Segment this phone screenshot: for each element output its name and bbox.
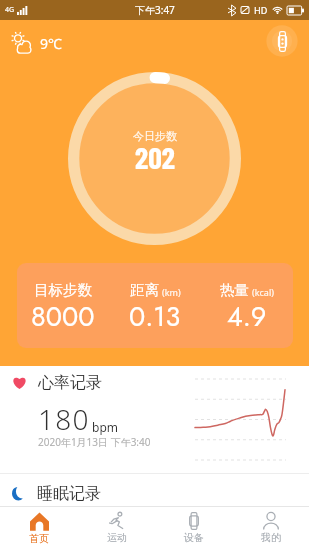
- staticText: bpm: [92, 419, 118, 435]
- staticText: 目标步数: [34, 281, 92, 299]
- staticText: (km): [162, 286, 181, 298]
- staticText: 0.13: [129, 297, 181, 336]
- staticText: 热量: [220, 281, 249, 299]
- button[interactable]: 目标步数: [17, 263, 293, 348]
- staticText: 运动: [107, 531, 127, 544]
- staticText: 202: [135, 139, 175, 175]
- button[interactable]: My device: [265, 24, 299, 58]
- button[interactable]: 我的: [232, 507, 309, 549]
- staticText: 2020年1月13日 下午3:40: [38, 435, 151, 449]
- staticText: 睡眠记录: [37, 484, 101, 504]
- button[interactable]: 睡眠记录: [0, 474, 309, 506]
- staticText: 心率记录: [38, 373, 102, 393]
- staticText: 设备: [184, 531, 204, 544]
- staticText: 8000: [31, 297, 95, 336]
- staticText: HD: [254, 4, 268, 16]
- staticText: 4.9: [227, 297, 267, 336]
- staticText: 距离: [130, 281, 159, 299]
- staticText: 4G: [5, 5, 15, 15]
- button[interactable]: 运动: [78, 507, 155, 549]
- staticText: 今日步数: [133, 129, 177, 143]
- staticText: (kcal): [252, 286, 274, 298]
- staticText: 我的: [261, 531, 281, 544]
- button[interactable]: 首页: [0, 507, 78, 549]
- staticText: 9℃: [40, 34, 62, 53]
- staticText: 首页: [29, 532, 49, 545]
- button[interactable]: 9℃: [4, 27, 66, 57]
- button[interactable]: 心率记录: [0, 366, 309, 473]
- staticText: 下午3:47: [135, 3, 175, 17]
- button[interactable]: 设备: [155, 507, 232, 549]
- staticText: 180: [38, 400, 90, 438]
